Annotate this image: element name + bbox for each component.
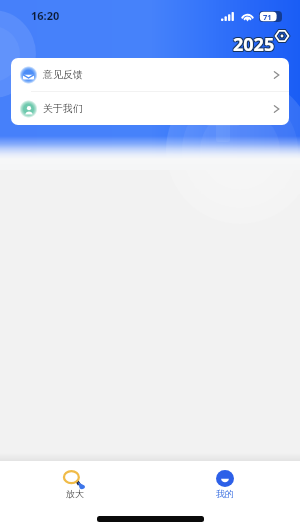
staticText: 2025 bbox=[233, 31, 275, 56]
staticText: 16:20 bbox=[31, 8, 60, 23]
other: 放大 bbox=[63, 470, 87, 490]
staticText: 关于我们 bbox=[43, 102, 83, 115]
staticText: 2025 bbox=[232, 31, 274, 56]
button[interactable]: 放大 bbox=[0, 461, 150, 508]
button[interactable]: 关于我们 bbox=[11, 92, 289, 125]
staticText: 2025 bbox=[234, 31, 276, 56]
staticText: 2025 bbox=[232, 32, 274, 57]
button[interactable]: 意见反馈 bbox=[11, 58, 289, 91]
other: 我的 bbox=[216, 470, 234, 487]
staticText: 71 bbox=[263, 12, 272, 22]
staticText: 2025 bbox=[232, 33, 274, 58]
staticText: 放大 bbox=[66, 488, 84, 499]
staticText: 2025 bbox=[234, 33, 276, 58]
button[interactable]: 我的 bbox=[150, 461, 300, 508]
staticText: 我的 bbox=[216, 488, 234, 499]
staticText: 意见反馈 bbox=[43, 68, 83, 81]
staticText: 2025 bbox=[234, 32, 276, 57]
staticText: 2025 bbox=[233, 32, 275, 57]
staticText: 2025 bbox=[233, 33, 275, 58]
